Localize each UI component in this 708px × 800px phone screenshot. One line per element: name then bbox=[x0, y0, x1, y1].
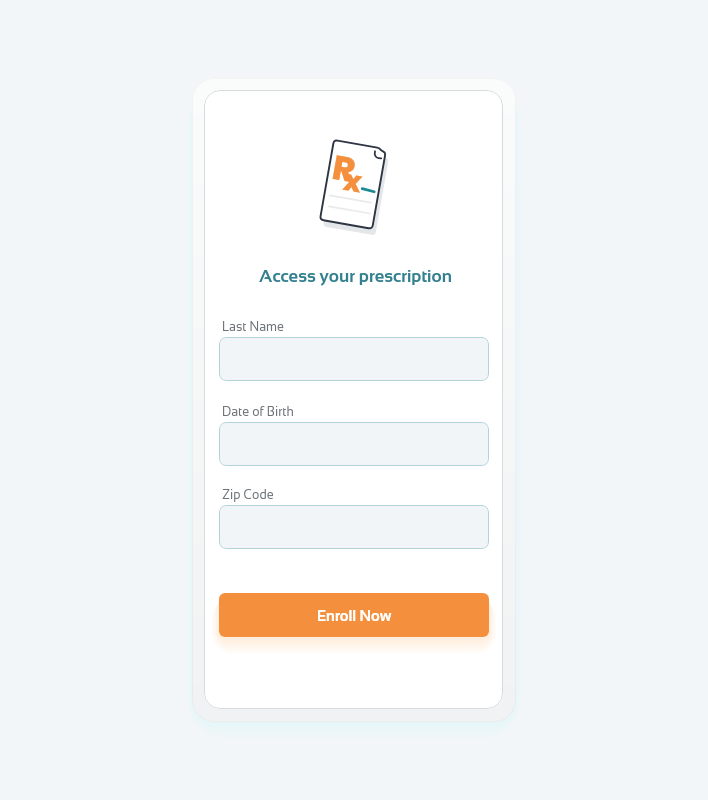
staticText: Date of Birth bbox=[222, 405, 294, 419]
staticText: Enroll Now bbox=[317, 607, 392, 624]
staticText: x bbox=[340, 160, 366, 204]
staticText: Zip Code bbox=[222, 488, 274, 502]
button[interactable]: Zip Code bbox=[219, 505, 489, 549]
button[interactable]: Enroll Now bbox=[219, 593, 489, 637]
staticText: R bbox=[329, 143, 360, 194]
button[interactable]: Date of Birth bbox=[219, 422, 489, 466]
staticText: Access your prescription bbox=[206, 266, 503, 286]
button[interactable]: Last Name bbox=[219, 337, 489, 381]
staticText: Last Name bbox=[222, 320, 284, 334]
